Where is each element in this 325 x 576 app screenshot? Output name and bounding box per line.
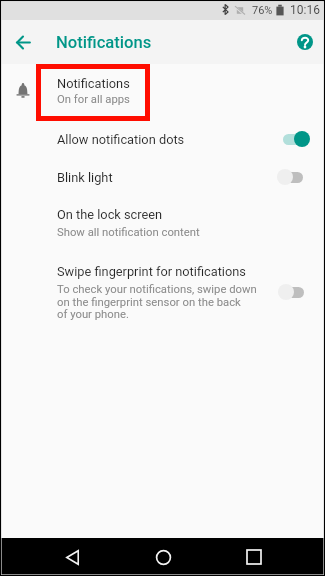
staticText: On the lock screen — [57, 207, 163, 222]
button[interactable]: Help — [283, 20, 325, 64]
staticText: Notifications — [57, 76, 130, 91]
staticText: Show all notification content — [57, 226, 200, 239]
staticText: Swipe fingerprint for notifications — [57, 264, 246, 279]
button[interactable]: On the lock screen — [0, 201, 325, 245]
button[interactable]: Back — [48, 538, 96, 576]
staticText: 76% — [252, 4, 273, 17]
button[interactable]: Back — [1, 20, 45, 64]
staticText: Notifications — [56, 33, 152, 52]
staticText: On for all apps — [57, 93, 130, 106]
button[interactable]: Recents — [230, 538, 278, 576]
staticText: 10:16 — [290, 3, 320, 17]
button[interactable]: Notifications — [0, 65, 325, 117]
button[interactable]: Blink light — [0, 158, 325, 196]
staticText: Blink light — [57, 170, 113, 185]
staticText: To check your notifications, swipe down … — [57, 283, 257, 321]
button[interactable]: Home — [139, 538, 187, 576]
staticText: Allow notification dots — [57, 132, 185, 147]
button[interactable]: Allow notification dots — [0, 120, 325, 158]
button[interactable]: Swipe fingerprint for notifications — [0, 260, 325, 325]
